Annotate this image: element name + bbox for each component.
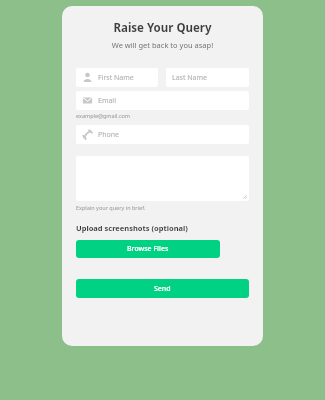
button[interactable]: Email bbox=[76, 91, 249, 110]
staticText: Upload screenshots (optional) bbox=[76, 223, 188, 233]
staticText: Phone bbox=[98, 130, 120, 140]
button[interactable]: First Name bbox=[76, 68, 158, 87]
staticText: Explain your query in brief. bbox=[76, 204, 146, 211]
staticText: Send bbox=[154, 284, 171, 294]
staticText: Last Name bbox=[172, 73, 208, 83]
staticText: First Name bbox=[98, 73, 134, 83]
button[interactable]: Browse Files bbox=[76, 240, 220, 258]
button[interactable]: Phone bbox=[76, 125, 249, 144]
staticText: Browse Files bbox=[127, 244, 169, 254]
staticText: We will get back to you asap! bbox=[62, 40, 263, 50]
staticText: example@gmail.com bbox=[76, 112, 131, 119]
button[interactable]: Send bbox=[76, 279, 249, 298]
button[interactable]: Last Name bbox=[166, 68, 249, 87]
staticText: Raise Your Query bbox=[62, 20, 263, 36]
staticText: Email bbox=[98, 96, 116, 106]
